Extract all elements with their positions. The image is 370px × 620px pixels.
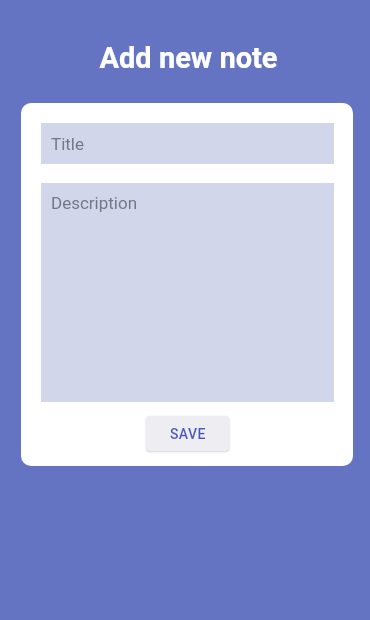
staticText: Description — [51, 193, 138, 213]
staticText: Add new note — [99, 41, 278, 75]
staticText: SAVE — [170, 426, 206, 442]
button[interactable]: SAVE — [146, 416, 229, 451]
staticText: Title — [51, 134, 84, 154]
button[interactable]: Title input field — [41, 123, 334, 164]
button[interactable]: Description input field — [41, 183, 334, 402]
